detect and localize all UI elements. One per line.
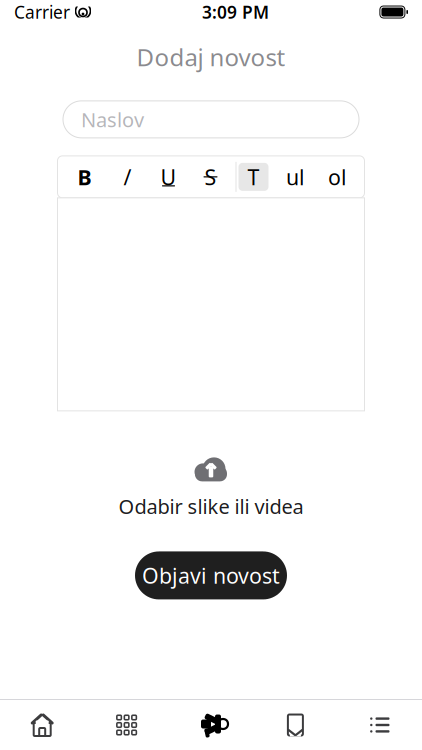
staticText: ul [286, 163, 305, 191]
button[interactable]: News [169, 701, 253, 749]
staticText: T [247, 163, 259, 191]
staticText: ol [328, 163, 347, 191]
button[interactable]: ol [320, 159, 354, 195]
button[interactable]: T [236, 159, 270, 195]
button[interactable]: Odabir slike ili videa [0, 449, 422, 525]
staticText: Naslov [81, 106, 144, 133]
staticText: B [77, 163, 91, 191]
staticText: 3:09 PM [202, 0, 269, 23]
button[interactable]: Home [0, 701, 84, 749]
button[interactable]: U [151, 159, 185, 195]
staticText: U [160, 163, 176, 191]
button[interactable]: Saved [253, 701, 338, 749]
button[interactable]: Objavi novost [135, 551, 287, 599]
button[interactable]: Naslov [63, 101, 359, 138]
staticText: Odabir slike ili videa [118, 493, 303, 519]
button[interactable]: S [193, 159, 227, 195]
staticText: / [123, 163, 131, 191]
button[interactable]: ul [278, 159, 312, 195]
button[interactable]: Categories [84, 701, 169, 749]
staticText: Dodaj novost [136, 41, 285, 73]
button[interactable]: / [109, 159, 143, 195]
button[interactable]: More [338, 701, 422, 749]
button[interactable]: B [67, 159, 101, 195]
staticText: Carrier [14, 0, 70, 23]
staticText: S [204, 163, 216, 191]
staticText: Objavi novost [142, 561, 280, 590]
